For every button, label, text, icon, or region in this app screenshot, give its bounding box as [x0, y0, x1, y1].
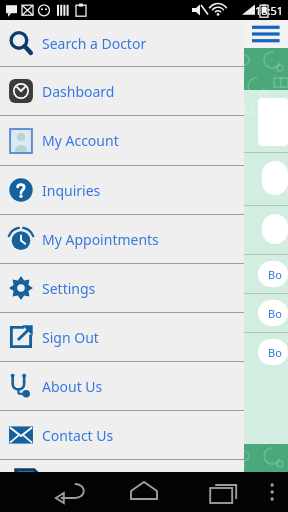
staticText: 18:51 [255, 3, 284, 18]
staticText: Search a Doctor [42, 34, 147, 53]
button[interactable] [262, 161, 288, 195]
staticText: Bo [268, 306, 282, 321]
staticText: About Us [42, 377, 103, 396]
button[interactable] [258, 98, 288, 146]
button[interactable]: Dashboard [0, 67, 244, 115]
staticText: My Appointments [42, 230, 159, 249]
staticText: My Account [42, 131, 119, 150]
button[interactable]: About Us [0, 362, 244, 410]
staticText: Dashboard [42, 82, 115, 101]
button[interactable]: Open navigation menu [252, 22, 282, 46]
staticText: Contact Us [42, 426, 114, 445]
button[interactable]: Contact Us [0, 411, 244, 459]
button[interactable]: Sign Out [0, 313, 244, 361]
button[interactable]: Bo [258, 300, 288, 326]
button[interactable]: Settings [0, 264, 244, 312]
button[interactable]: My Account [0, 116, 244, 165]
button[interactable]: Inquiries [0, 166, 244, 214]
button[interactable]: Bo [258, 261, 288, 287]
button[interactable]: Bo [258, 339, 288, 365]
staticText: Bo [268, 267, 282, 282]
staticText: Bo [268, 345, 282, 360]
button[interactable]: Search a Doctor [0, 20, 244, 66]
button[interactable] [262, 214, 288, 244]
staticText: Sign Out [42, 328, 99, 347]
button[interactable]: My Appointments [0, 215, 244, 263]
staticText: Inquiries [42, 181, 101, 200]
staticText: Settings [42, 279, 96, 298]
